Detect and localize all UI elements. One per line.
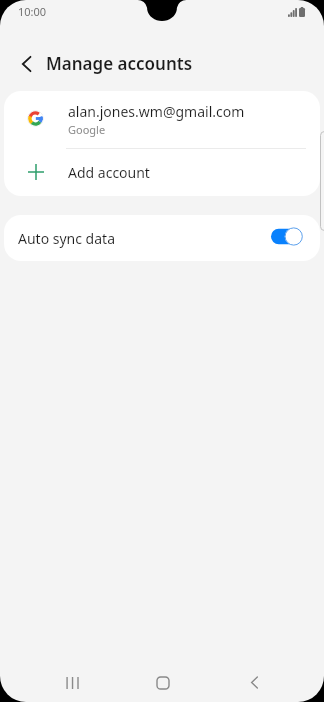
button[interactable]: Recent apps <box>45 656 98 702</box>
button[interactable]: Auto sync data <box>4 215 320 261</box>
staticText: Auto sync data <box>18 229 115 248</box>
staticText: Google <box>68 122 106 137</box>
staticText: Add account <box>68 163 150 182</box>
button[interactable]: Home <box>136 656 189 702</box>
button[interactable]: Back <box>228 656 281 702</box>
button[interactable]: Add account <box>4 149 320 196</box>
staticText: Manage accounts <box>46 52 193 75</box>
button[interactable]: alan.jones.wm@gmail.com <box>4 91 320 148</box>
staticText: alan.jones.wm@gmail.com <box>68 102 245 121</box>
button[interactable]: Navigate up <box>5 43 47 85</box>
staticText: 10:00 <box>18 4 47 19</box>
